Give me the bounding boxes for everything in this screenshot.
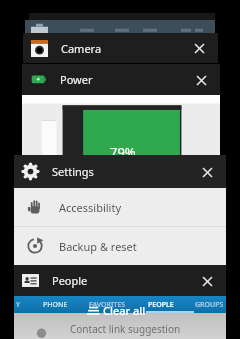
- button[interactable]: Dismiss Power: [190, 69, 212, 91]
- staticText: PEOPLE: [148, 300, 174, 310]
- button[interactable]: Power: [22, 64, 220, 95]
- staticText: Y: [16, 300, 21, 310]
- button[interactable]: Backup & reset: [14, 227, 226, 265]
- staticText: Contact link suggestion: [70, 322, 181, 336]
- button[interactable]: Dismiss Camera: [188, 37, 210, 59]
- staticText: Power: [60, 72, 93, 87]
- staticText: PHONE: [43, 300, 68, 310]
- staticText: People: [52, 273, 88, 288]
- staticText: Accessibility: [59, 200, 122, 215]
- staticText: GROUPS: [195, 300, 224, 310]
- button[interactable]: Settings: [14, 155, 226, 188]
- button[interactable]: [25, 20, 215, 33]
- button[interactable]: Accessibility: [14, 188, 226, 226]
- button[interactable]: Clear all: [85, 302, 148, 319]
- button[interactable]: People: [14, 265, 226, 296]
- staticText: FAVORITES: [89, 300, 126, 310]
- staticText: Camera: [61, 41, 102, 56]
- staticText: Backup & reset: [59, 239, 137, 254]
- staticText: 79%: [110, 143, 136, 161]
- button[interactable]: Camera: [23, 33, 218, 63]
- staticText: Settings: [52, 164, 94, 179]
- button[interactable]: Dismiss Settings: [196, 161, 218, 183]
- button[interactable]: Dismiss People: [196, 270, 218, 292]
- button[interactable]: Y: [14, 296, 226, 339]
- staticText: Clear all: [103, 303, 146, 318]
- button[interactable]: 79%: [22, 95, 220, 160]
